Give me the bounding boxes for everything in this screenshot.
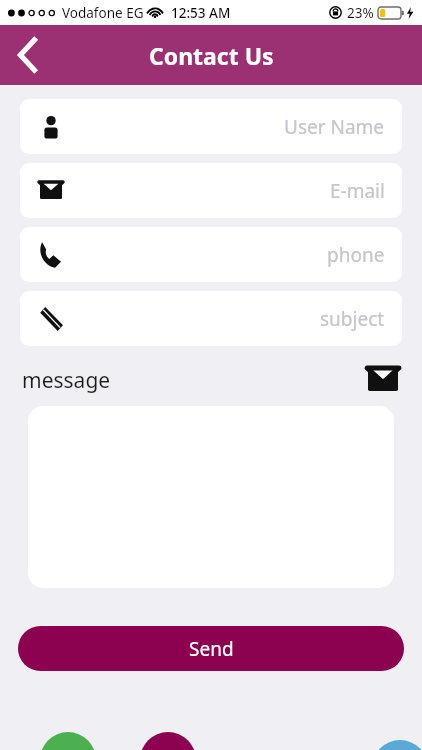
button[interactable]: Back — [0, 27, 56, 83]
button[interactable]: E-mail — [20, 163, 402, 218]
staticText: Vodafone EG — [62, 4, 144, 22]
button[interactable]: Email message — [366, 363, 400, 397]
staticText: subject — [320, 306, 385, 332]
staticText: 23% — [347, 4, 374, 22]
staticText: User Name — [284, 114, 385, 140]
button[interactable]: User Name — [20, 99, 402, 154]
staticText: Send — [189, 636, 234, 662]
staticText: Contact Us — [149, 40, 274, 71]
button[interactable]: subject — [20, 291, 402, 346]
button[interactable]: Send — [18, 626, 404, 671]
staticText: phone — [327, 242, 385, 268]
staticText: message — [22, 366, 111, 395]
staticText: E-mail — [330, 178, 385, 204]
button[interactable]: phone — [20, 227, 402, 282]
staticText: 12:53 AM — [171, 4, 231, 22]
